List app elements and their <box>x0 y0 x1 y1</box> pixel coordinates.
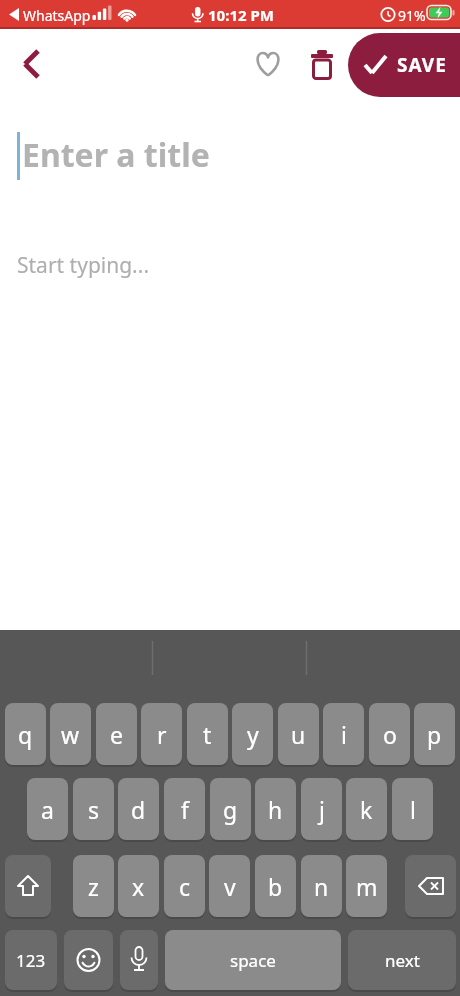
staticText: h <box>268 794 283 825</box>
staticText: v <box>224 871 236 902</box>
button[interactable]: k <box>346 778 387 840</box>
button[interactable]: x <box>118 855 159 917</box>
staticText: d <box>131 794 146 825</box>
button[interactable]: i <box>323 703 364 765</box>
button[interactable]: u <box>278 703 319 765</box>
button[interactable] <box>64 930 113 990</box>
staticText: p <box>427 719 442 750</box>
staticText: u <box>291 719 306 750</box>
staticText: next <box>385 949 420 972</box>
staticText: Enter a title <box>22 133 210 177</box>
button[interactable]: m <box>346 855 387 917</box>
staticText: f <box>181 794 189 825</box>
staticText: space <box>230 949 276 972</box>
staticText: x <box>132 871 145 902</box>
button[interactable]: y <box>232 703 273 765</box>
staticText: SAVE <box>397 52 447 78</box>
button[interactable]: j <box>301 778 342 840</box>
button[interactable] <box>300 43 344 87</box>
button[interactable]: v <box>209 855 250 917</box>
staticText: e <box>110 719 123 750</box>
button[interactable]: d <box>118 778 159 840</box>
button[interactable]: z <box>73 855 114 917</box>
staticText: WhatsApp <box>23 6 91 25</box>
button[interactable]: w <box>50 703 91 765</box>
button[interactable]: t <box>187 703 228 765</box>
button[interactable] <box>120 930 158 990</box>
button[interactable]: 123 <box>5 930 57 990</box>
button[interactable]: space <box>165 930 341 990</box>
staticText: i <box>341 719 347 750</box>
staticText: o <box>383 719 397 750</box>
staticText: 123 <box>16 949 46 972</box>
button[interactable]: b <box>255 855 296 917</box>
button[interactable]: SAVE <box>348 33 460 97</box>
staticText: 91% <box>398 6 426 25</box>
staticText: t <box>203 719 212 750</box>
staticText: k <box>360 794 373 825</box>
staticText: q <box>18 719 33 750</box>
button[interactable]: next <box>348 930 456 990</box>
button[interactable]: c <box>164 855 205 917</box>
button[interactable]: e <box>96 703 137 765</box>
staticText: a <box>41 794 54 825</box>
button[interactable]: f <box>164 778 205 840</box>
staticText: z <box>88 871 99 902</box>
button[interactable] <box>405 855 456 917</box>
button[interactable]: h <box>255 778 296 840</box>
staticText: b <box>268 871 283 902</box>
button[interactable]: q <box>5 703 46 765</box>
staticText: y <box>247 719 259 750</box>
staticText: l <box>410 794 416 825</box>
button[interactable]: n <box>301 855 342 917</box>
button[interactable]: o <box>369 703 410 765</box>
staticText: 10:12 PM <box>208 5 274 25</box>
staticText: s <box>88 794 100 825</box>
button[interactable]: g <box>210 778 251 840</box>
button[interactable]: l <box>392 778 433 840</box>
button[interactable]: p <box>414 703 455 765</box>
button[interactable] <box>246 43 290 87</box>
staticText: j <box>319 794 325 825</box>
staticText: g <box>223 794 238 825</box>
button[interactable]: a <box>27 778 68 840</box>
button[interactable]: r <box>141 703 182 765</box>
staticText: r <box>157 719 167 750</box>
button[interactable]: s <box>73 778 114 840</box>
staticText: m <box>356 871 378 902</box>
button[interactable] <box>5 855 51 917</box>
staticText: w <box>61 719 80 750</box>
staticText: n <box>314 871 329 902</box>
button[interactable] <box>10 43 54 87</box>
staticText: Start typing... <box>17 251 150 280</box>
staticText: c <box>179 871 191 902</box>
